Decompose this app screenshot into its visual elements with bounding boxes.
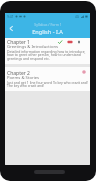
button[interactable]: Chapter 1 xyxy=(5,38,90,64)
staticText: Poems & Stories xyxy=(7,75,40,81)
staticText: 4G xyxy=(75,15,80,19)
button[interactable]: Chapter 2 xyxy=(5,67,90,91)
staticText: Detailed information regarding how to in… xyxy=(7,49,88,61)
staticText: Chapter 2 xyxy=(7,70,30,77)
button[interactable]: Video xyxy=(67,39,73,45)
button[interactable]: Back xyxy=(7,24,16,33)
button[interactable]: Locked xyxy=(81,69,87,75)
staticText: Just and get 1 line four word To key who… xyxy=(7,80,88,88)
staticText: Syllabus / Form 1 xyxy=(34,22,62,27)
staticText: 9:41 xyxy=(7,14,14,19)
button[interactable]: Completed xyxy=(57,39,63,45)
button[interactable]: Notes xyxy=(76,39,82,45)
staticText: English - I.A xyxy=(32,28,63,36)
staticText: Greetings & Introductions xyxy=(7,44,59,50)
staticText: Chapter 1 xyxy=(7,39,30,46)
